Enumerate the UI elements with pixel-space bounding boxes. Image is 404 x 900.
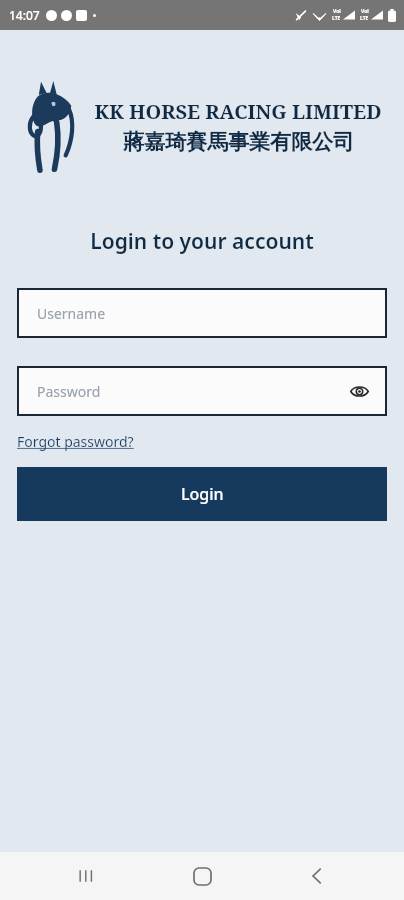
- staticText: Vol: [333, 8, 341, 15]
- button[interactable]: Username: [17, 288, 387, 338]
- button[interactable]: Back: [289, 852, 345, 900]
- staticText: LTE: [332, 15, 341, 22]
- staticText: 蔣嘉琦賽馬事業有限公司: [123, 129, 354, 155]
- staticText: Login to your account: [0, 227, 404, 256]
- button[interactable]: Home: [174, 852, 230, 900]
- staticText: KK HORSE RACING LIMITED: [94, 98, 382, 125]
- button[interactable]: Forgot password?: [17, 430, 134, 453]
- staticText: Vol: [361, 8, 369, 15]
- staticText: Login: [181, 483, 224, 505]
- staticText: Username: [37, 304, 106, 323]
- staticText: 14:07: [9, 7, 40, 23]
- button[interactable]: Login: [17, 467, 387, 521]
- button[interactable]: Show password: [345, 377, 373, 405]
- button[interactable]: Recent apps: [59, 852, 115, 900]
- button[interactable]: Password: [17, 366, 387, 416]
- staticText: Password: [37, 382, 101, 401]
- staticText: LTE: [360, 15, 369, 22]
- staticText: Forgot password?: [17, 432, 134, 451]
